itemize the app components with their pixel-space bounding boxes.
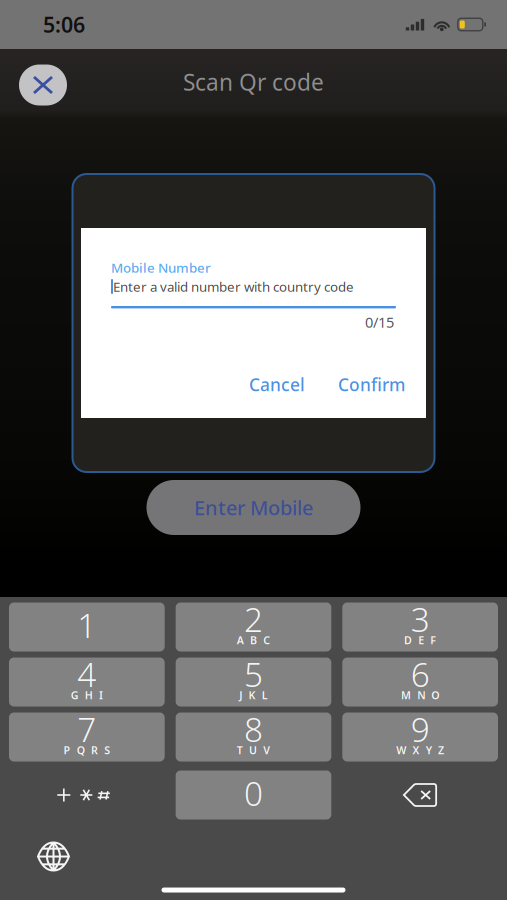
staticText: 0 xyxy=(244,771,263,815)
staticText: D E F xyxy=(404,633,436,647)
staticText: 9 xyxy=(411,707,430,751)
staticText: Enter Mobile xyxy=(194,494,313,521)
button[interactable]: Switch keyboard xyxy=(29,833,78,879)
staticText: M N O xyxy=(401,688,439,702)
staticText: Cancel xyxy=(249,373,305,396)
staticText: W X Y Z xyxy=(396,743,444,757)
button[interactable]: Delete xyxy=(342,770,498,819)
staticText: 5 xyxy=(244,652,263,696)
button[interactable]: Cancel xyxy=(241,366,313,403)
button[interactable]: Enter Mobile xyxy=(146,480,360,535)
staticText: 1 xyxy=(77,603,96,647)
button[interactable]: 2 xyxy=(176,602,331,651)
staticText: 6 xyxy=(411,652,430,696)
button[interactable]: 9 xyxy=(342,712,498,761)
button[interactable]: 7 xyxy=(9,712,165,761)
staticText: Scan Qr code xyxy=(183,67,324,97)
staticText: G H I xyxy=(71,688,103,702)
staticText: Mobile Number xyxy=(111,259,211,276)
button[interactable]: 4 xyxy=(9,657,165,706)
staticText: 2 xyxy=(244,597,263,641)
staticText: Enter a valid number with country code xyxy=(113,278,354,295)
staticText: 7 xyxy=(77,707,96,751)
staticText: 3 xyxy=(411,597,430,641)
staticText: P Q R S xyxy=(63,743,110,757)
button[interactable]: 1 xyxy=(9,602,165,651)
staticText: J K L xyxy=(239,688,268,702)
button[interactable]: Close xyxy=(19,64,67,105)
staticText: A B C xyxy=(237,633,270,647)
staticText: T U V xyxy=(237,743,270,757)
staticText: Confirm xyxy=(338,373,405,396)
button[interactable]: 8 xyxy=(176,712,331,761)
staticText: 5:06 xyxy=(43,10,85,39)
button[interactable]: 5 xyxy=(176,657,331,706)
staticText: 8 xyxy=(244,707,263,751)
button[interactable]: Confirm xyxy=(330,366,413,403)
button[interactable]: 6 xyxy=(342,657,498,706)
button[interactable]: 3 xyxy=(342,602,498,651)
staticText: 0/15 xyxy=(365,312,394,332)
button[interactable]: Plus star hash xyxy=(9,770,165,819)
staticText: 4 xyxy=(77,652,96,696)
button[interactable]: 0 xyxy=(176,770,331,819)
